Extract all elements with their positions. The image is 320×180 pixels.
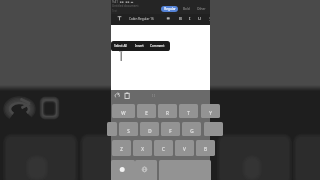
button[interactable]: C <box>154 140 173 156</box>
staticText: U <box>198 15 202 21</box>
button[interactable]: Italic <box>186 14 194 22</box>
button[interactable]: W <box>112 104 135 118</box>
staticText: Cabin Regular 16 <box>129 17 154 21</box>
staticText: Regular <box>164 7 176 11</box>
button[interactable] <box>107 122 117 136</box>
staticText: ⋮ <box>207 16 211 21</box>
staticText: V <box>183 146 186 152</box>
button[interactable]: X <box>133 140 152 156</box>
button[interactable]: R <box>158 104 177 118</box>
staticText: Insert <box>135 44 144 48</box>
button[interactable]: V <box>175 140 194 156</box>
staticText: Y <box>209 110 212 116</box>
button[interactable]: Untitled document <box>112 4 139 8</box>
staticText: 9:41 ▪▪ ▪▪ ▬ <box>112 0 134 4</box>
button[interactable]: B <box>196 140 215 156</box>
staticText: I <box>189 15 191 21</box>
staticText: S <box>127 128 130 134</box>
staticText: X <box>141 146 144 152</box>
button[interactable]: Paste <box>124 92 131 99</box>
button[interactable]: F <box>161 122 180 136</box>
staticText: B <box>204 146 207 152</box>
staticText: D <box>148 128 152 134</box>
button[interactable]: Underline <box>196 14 204 22</box>
button[interactable]: S <box>119 122 138 136</box>
staticText: Select All <box>114 44 127 48</box>
button[interactable]: G <box>182 122 201 136</box>
staticText: G <box>190 128 194 134</box>
button[interactable]: Regular <box>161 6 178 12</box>
button[interactable]: Text colour <box>166 16 171 21</box>
button[interactable]: Emoji <box>111 160 135 180</box>
button[interactable] <box>204 122 223 136</box>
staticText: Text <box>112 9 118 13</box>
button[interactable]: Other <box>195 6 208 12</box>
staticText: Z <box>120 146 123 152</box>
button[interactable]: Z <box>112 140 131 156</box>
staticText: F <box>169 128 172 134</box>
button[interactable]: 9:41 ▪▪ ▪▪ ▬ <box>112 0 134 4</box>
button[interactable]: Text style <box>116 15 123 22</box>
staticText: Bold <box>183 7 190 11</box>
staticText: W <box>121 110 126 116</box>
button[interactable]: Cabin Regular 16 <box>129 17 154 21</box>
button[interactable]: Select All <box>114 41 127 51</box>
button[interactable]: Language <box>135 160 157 180</box>
button[interactable]: Bold <box>181 6 192 12</box>
button[interactable]: More <box>206 16 211 21</box>
button[interactable]: Insert <box>134 41 144 51</box>
staticText: E <box>145 110 148 116</box>
staticText: Comment <box>150 44 165 48</box>
button[interactable]: T <box>179 104 198 118</box>
button[interactable]: E <box>137 104 156 118</box>
staticText: T <box>187 110 190 116</box>
button[interactable]: D <box>140 122 159 136</box>
button[interactable]: Bold <box>176 14 184 22</box>
staticText: R <box>166 110 169 116</box>
staticText: C <box>162 146 165 152</box>
button[interactable]: Redo <box>114 92 121 99</box>
button[interactable]: Comment <box>149 41 166 51</box>
staticText: I I <box>152 93 156 98</box>
staticText: B <box>179 15 182 21</box>
button[interactable]: Y <box>201 104 220 118</box>
staticText: Other <box>197 7 206 11</box>
staticText: Untitled document <box>112 4 139 8</box>
